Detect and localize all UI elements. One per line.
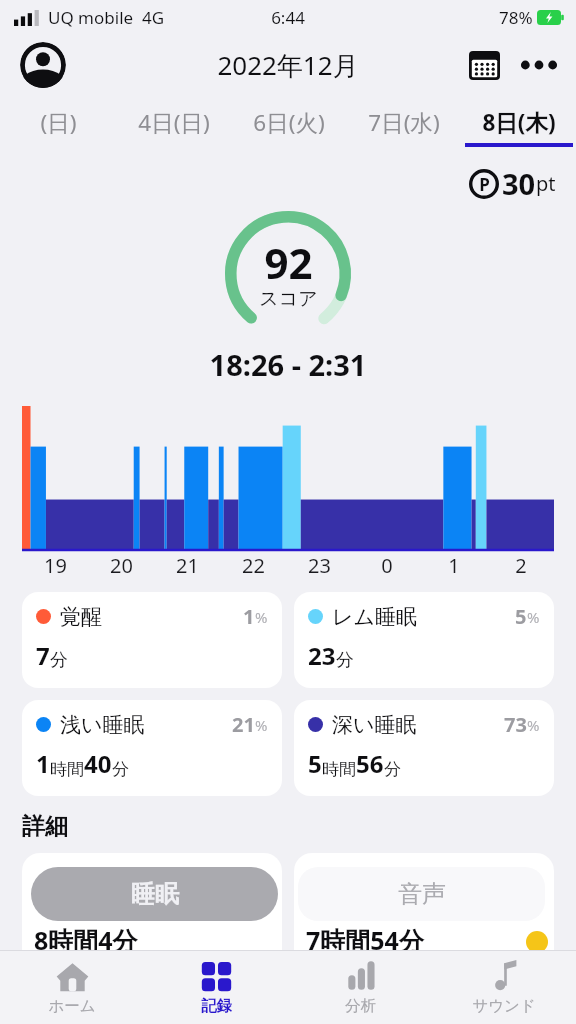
staticText: P [479, 173, 490, 196]
button[interactable]: Profile [20, 42, 66, 88]
staticText: UQ mobile [48, 6, 134, 29]
staticText: 23 [308, 552, 331, 579]
button[interactable]: ホーム [0, 951, 144, 1024]
button[interactable]: Calendar [462, 43, 506, 87]
staticText: 73 [504, 711, 527, 738]
staticText: ホーム [48, 996, 96, 1016]
staticText: 音声 [398, 879, 446, 909]
button[interactable]: 4日(日) [116, 96, 231, 148]
staticText: 分 [50, 649, 68, 672]
staticText: 記録 [201, 996, 232, 1016]
staticText: 6:44 [271, 6, 305, 29]
button[interactable]: 記録 [144, 951, 288, 1024]
staticText: 1 [448, 552, 460, 579]
staticText: 睡眠 [131, 879, 179, 909]
staticText: 6日(火) [253, 107, 325, 138]
staticText: 56 [356, 747, 384, 780]
staticText: 4日(日) [138, 107, 210, 138]
staticText: 7 [36, 639, 50, 672]
staticText: 21 [176, 552, 199, 579]
staticText: 時間 [50, 759, 84, 780]
staticText: 21 [232, 711, 255, 738]
staticText: 20 [110, 552, 133, 579]
staticText: 深い睡眠 [332, 712, 417, 738]
button[interactable]: 6日(火) [231, 96, 346, 148]
staticText: 5 [515, 603, 527, 630]
button[interactable]: 深い睡眠 [294, 700, 554, 796]
staticText: 5 [308, 747, 322, 780]
staticText: サウンド [472, 996, 536, 1016]
staticText: 1 [243, 603, 255, 630]
staticText: 7日(水) [368, 107, 440, 138]
staticText: 78% [499, 6, 533, 29]
staticText: 浅い睡眠 [60, 712, 145, 738]
staticText: 覚醒 [60, 604, 102, 630]
button[interactable]: More options [516, 42, 562, 88]
button[interactable]: 覚醒 [22, 592, 282, 688]
staticText: % [255, 607, 268, 627]
button[interactable]: 8時間4分 [22, 853, 282, 957]
button[interactable]: 分析 [288, 951, 432, 1024]
staticText: 19 [44, 552, 67, 579]
staticText: 0 [381, 552, 393, 579]
staticText: 詳細 [22, 812, 68, 841]
button[interactable]: (日) [0, 96, 116, 148]
staticText: 8日(木) [482, 107, 556, 138]
staticText: pt [536, 170, 556, 197]
staticText: (日) [40, 107, 77, 138]
staticText: スコア [259, 287, 318, 311]
staticText: 22 [242, 552, 265, 579]
button[interactable]: 7時間54分 [294, 853, 554, 957]
staticText: 30 [502, 164, 536, 203]
button[interactable]: 音声 [298, 867, 545, 921]
staticText: 分 [112, 759, 129, 780]
staticText: 7時間54分 [306, 923, 424, 957]
staticText: % [527, 607, 540, 627]
staticText: 18:26 - 2:31 [0, 345, 576, 384]
button[interactable]: 睡眠 [31, 867, 278, 921]
button[interactable]: 7日(水) [346, 96, 461, 148]
button[interactable]: 8日(木) [461, 96, 576, 148]
staticText: 時間 [322, 759, 356, 780]
button[interactable]: 浅い睡眠 [22, 700, 282, 796]
staticText: 23 [308, 639, 336, 672]
staticText: 1 [36, 747, 50, 780]
staticText: 40 [84, 747, 112, 780]
staticText: 8時間4分 [34, 923, 138, 957]
staticText: 4G [142, 6, 165, 29]
staticText: 92 [264, 234, 313, 291]
staticText: 分 [384, 759, 401, 780]
staticText: % [527, 715, 540, 735]
staticText: % [255, 715, 268, 735]
staticText: 2022年12月 [217, 47, 359, 83]
staticText: レム睡眠 [332, 604, 417, 630]
staticText: 分析 [345, 996, 376, 1016]
button[interactable]: レム睡眠 [294, 592, 554, 688]
button[interactable]: サウンド [432, 951, 576, 1024]
staticText: 2 [515, 552, 527, 579]
staticText: 分 [336, 649, 354, 672]
